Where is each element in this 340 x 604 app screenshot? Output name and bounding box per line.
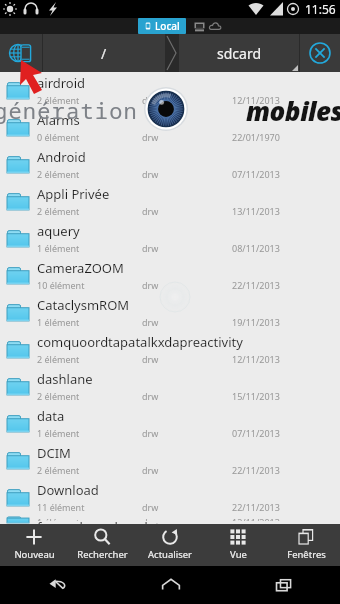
staticText: 0 élément <box>37 131 142 143</box>
staticText: 11:56 <box>305 1 336 17</box>
staticText: Vue <box>230 548 247 561</box>
staticText: 22/11/2013 <box>232 464 280 476</box>
button[interactable]: Stockage <box>0 34 42 72</box>
staticText: drw <box>142 501 232 513</box>
staticText: drw <box>142 464 232 476</box>
staticText: drw <box>142 516 232 521</box>
staticText: CataclysmROM <box>37 296 130 314</box>
button[interactable]: Fenêtres <box>272 524 340 566</box>
button[interactable]: comquoordtapatalkxdapreactivity <box>0 331 340 368</box>
button[interactable]: Download <box>0 479 340 516</box>
button[interactable]: Réseau <box>193 20 206 33</box>
staticText: 22/11/2013 <box>232 279 280 291</box>
staticText: 1 élément <box>37 316 142 328</box>
button[interactable]: CameraZOOM <box>0 257 340 294</box>
staticText: 1 élément <box>37 516 142 521</box>
button[interactable]: Alarms <box>0 109 340 146</box>
staticText: drw <box>142 279 232 291</box>
staticText: CameraZOOM <box>37 259 124 277</box>
staticText: drw <box>142 205 232 217</box>
staticText: 19/11/2013 <box>232 316 280 328</box>
button[interactable]: airdroid <box>0 72 340 109</box>
staticText: data <box>37 407 65 425</box>
staticText: 07/11/2013 <box>232 427 280 439</box>
button[interactable]: CataclysmROM <box>0 294 340 331</box>
button[interactable]: Local <box>138 18 186 34</box>
staticText: 12/11/2013 <box>232 353 280 365</box>
staticText: 10 élément <box>37 279 142 291</box>
staticText: 11 élément <box>37 501 142 513</box>
staticText: Fenêtres <box>287 548 326 561</box>
staticText: Download <box>37 481 99 499</box>
staticText: 13/11/2013 <box>232 205 280 217</box>
staticText: 22/01/1970 <box>232 131 280 143</box>
staticText: aquery <box>37 222 80 240</box>
staticText: / <box>101 44 107 63</box>
staticText: comquoordtapatalkxdapreactivity <box>37 333 243 351</box>
staticText: dashlane <box>37 370 93 388</box>
staticText: 2 élément <box>37 464 142 476</box>
button[interactable]: Accueil <box>114 566 227 604</box>
button[interactable]: aquery <box>0 220 340 257</box>
button[interactable]: sdcard <box>179 34 299 72</box>
staticText: drw <box>142 316 232 328</box>
button[interactable]: DCIM <box>0 442 340 479</box>
staticText: 1 élément <box>37 427 142 439</box>
button[interactable]: Appli Privée <box>0 183 340 220</box>
staticText: drw <box>142 168 232 180</box>
button[interactable]: Actualiser <box>136 524 204 566</box>
staticText: franco.kernel_updater <box>37 518 173 524</box>
staticText: drw <box>142 131 232 143</box>
staticText: 08/11/2013 <box>232 242 280 254</box>
staticText: Actualiser <box>148 548 192 561</box>
button[interactable]: Applications récentes <box>227 566 340 604</box>
button[interactable]: / <box>43 34 165 72</box>
staticText: 1 élément <box>37 242 142 254</box>
staticText: drw <box>142 353 232 365</box>
staticText: Nouveau <box>14 548 55 561</box>
button[interactable]: Nouveau <box>0 524 68 566</box>
button[interactable]: Vue <box>204 524 272 566</box>
staticText: Local <box>155 19 180 33</box>
button[interactable]: franco.kernel_updater <box>0 516 340 524</box>
button[interactable]: Android <box>0 146 340 183</box>
staticText: airdroid <box>37 74 86 92</box>
staticText: 2 élément <box>37 205 142 217</box>
staticText: 12/11/2013 <box>232 516 280 521</box>
button[interactable]: Retour <box>0 566 114 604</box>
staticText: sdcard <box>217 44 262 63</box>
staticText: 22/11/2013 <box>232 501 280 513</box>
staticText: drw <box>142 94 232 106</box>
staticText: génération <box>0 95 139 125</box>
staticText: 2 élément <box>37 168 142 180</box>
staticText: 15/11/2013 <box>232 390 280 402</box>
button[interactable]: Rechercher <box>68 524 136 566</box>
button[interactable]: dashlane <box>0 368 340 405</box>
staticText: 07/11/2013 <box>232 168 280 180</box>
staticText: 2 élément <box>37 390 142 402</box>
staticText: 12/11/2013 <box>232 94 280 106</box>
button[interactable]: data <box>0 405 340 442</box>
staticText: mobiles <box>246 93 340 128</box>
staticText: 2 élément <box>37 94 142 106</box>
staticText: drw <box>142 242 232 254</box>
button[interactable]: Fermer <box>300 34 340 72</box>
staticText: drw <box>142 427 232 439</box>
staticText: Android <box>37 148 86 166</box>
button[interactable]: Cloud <box>209 20 222 33</box>
staticText: Alarms <box>37 111 80 129</box>
staticText: drw <box>142 390 232 402</box>
staticText: DCIM <box>37 444 71 462</box>
staticText: Rechercher <box>77 548 128 561</box>
staticText: Appli Privée <box>37 185 110 203</box>
staticText: 2 élément <box>37 353 142 365</box>
